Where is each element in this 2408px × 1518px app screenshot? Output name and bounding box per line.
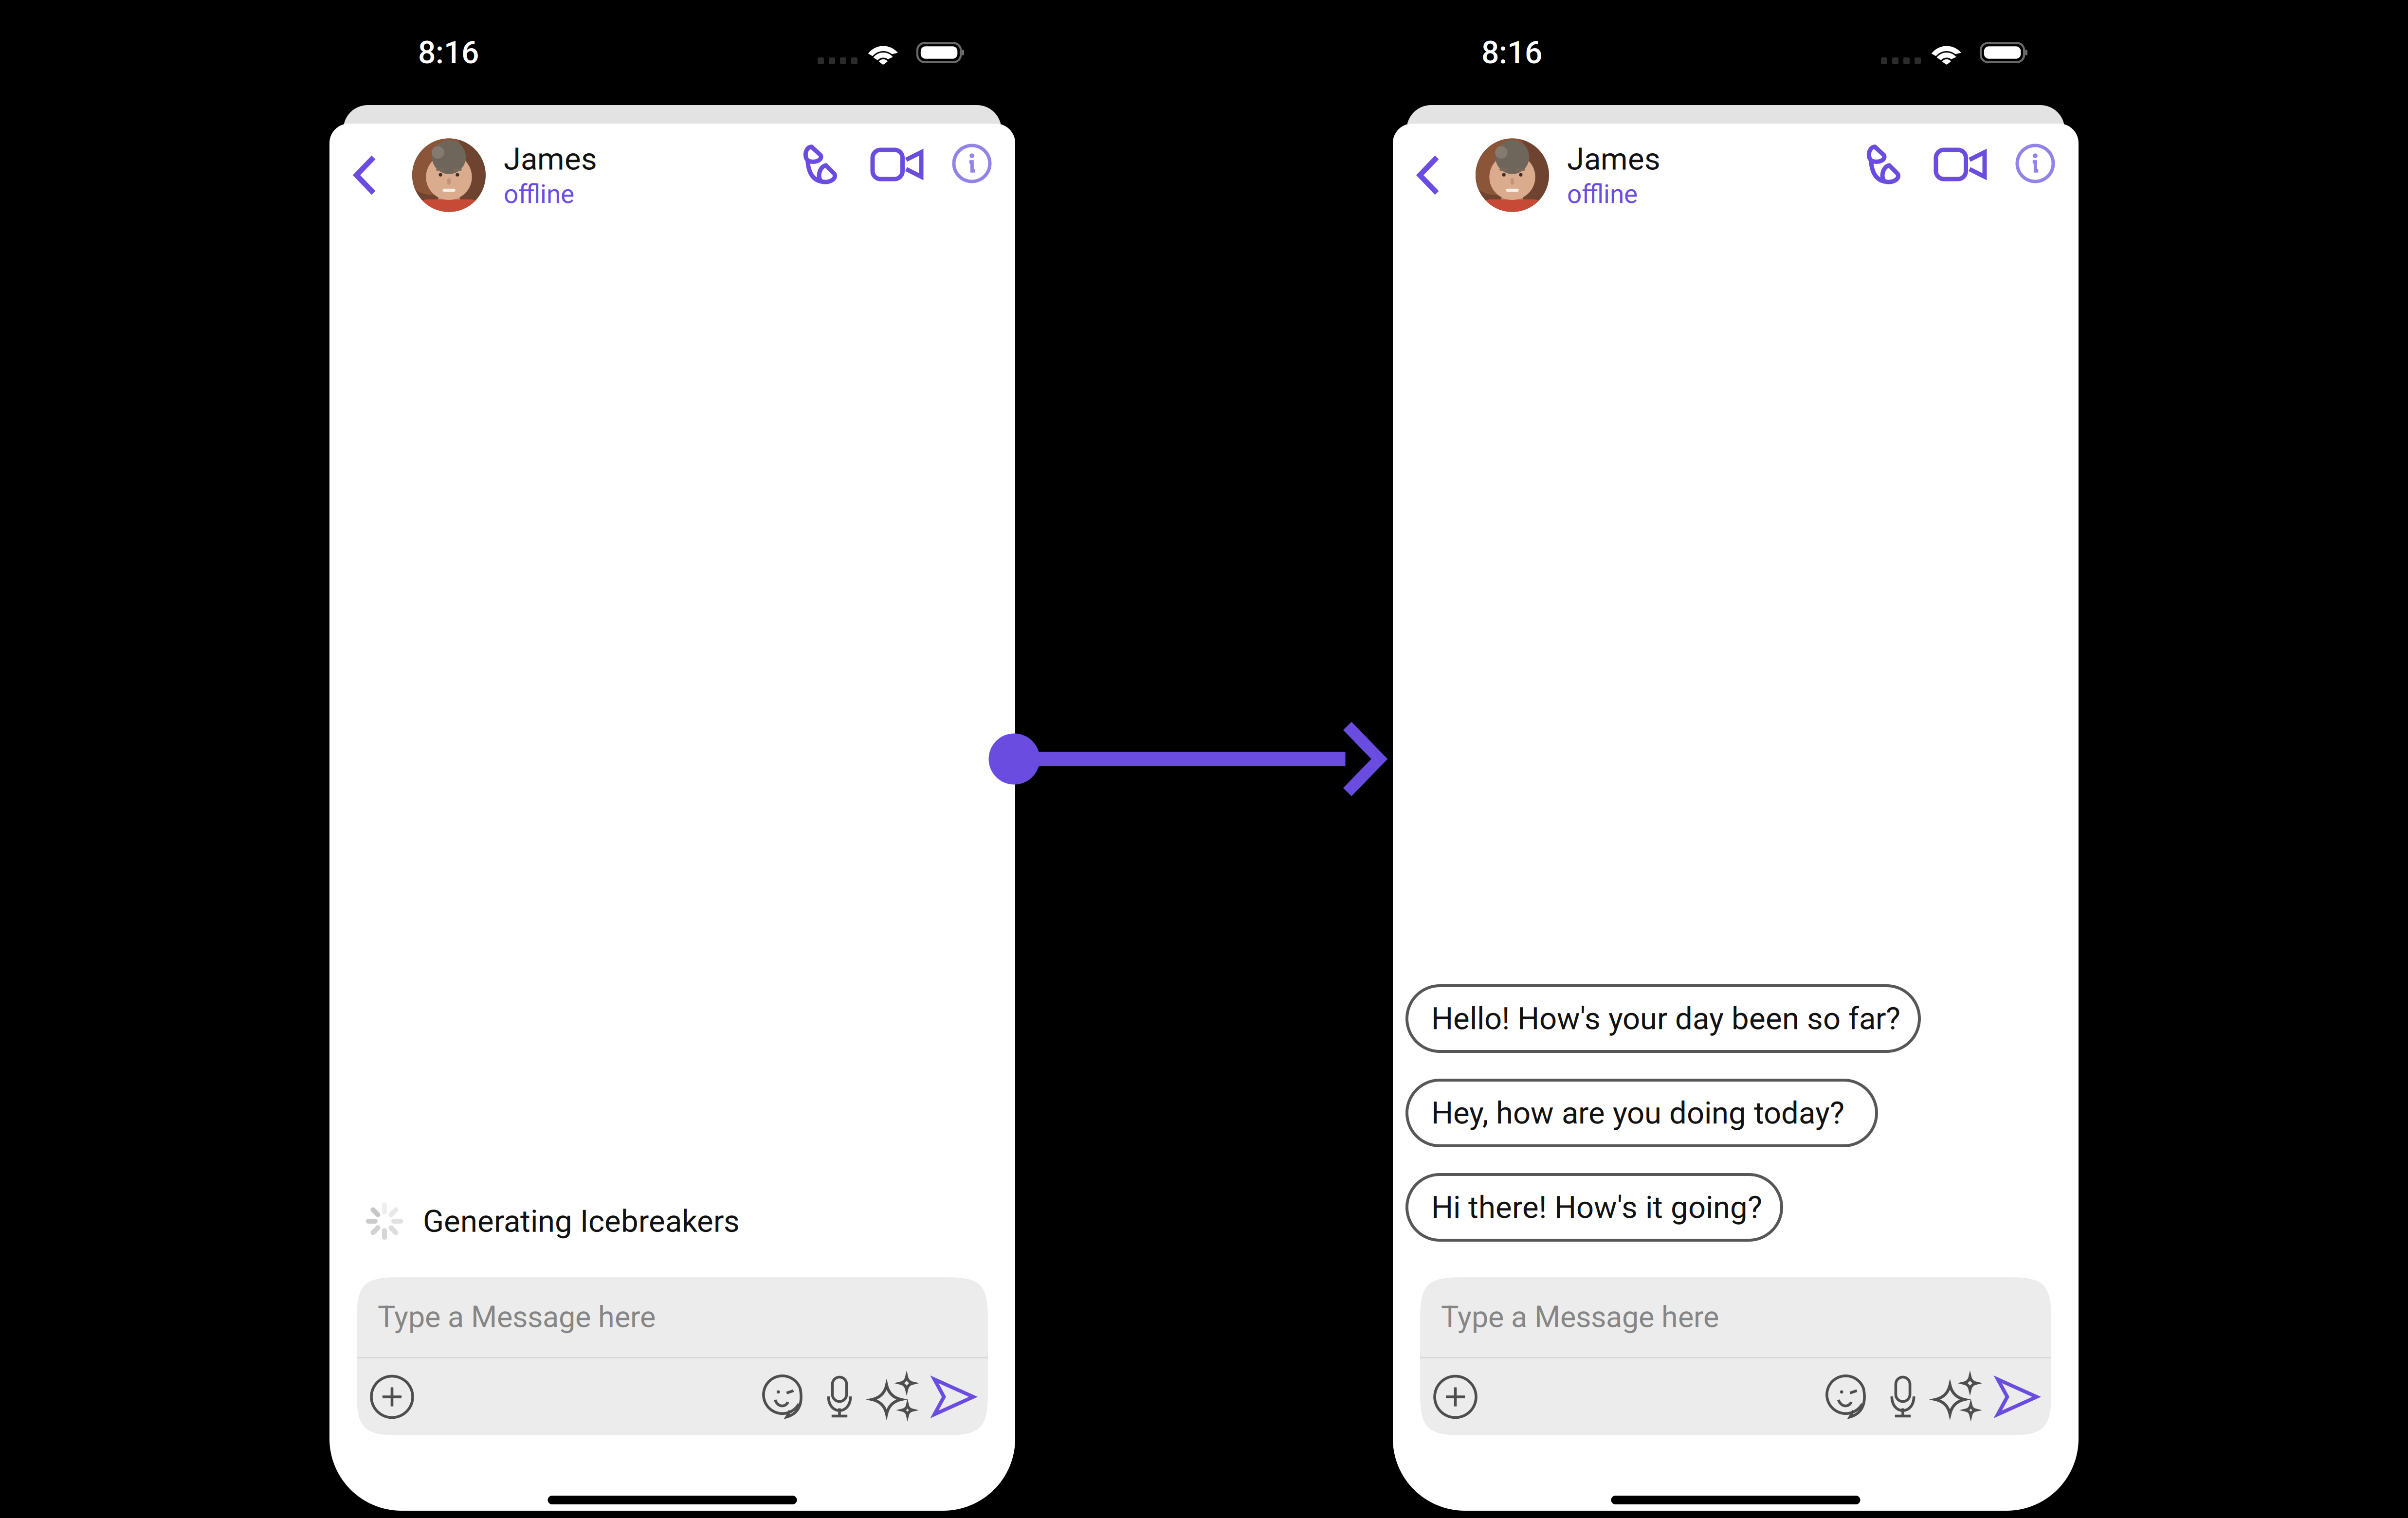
button[interactable]: Stickers [763, 1375, 806, 1418]
staticText: Type a Message here [1441, 1300, 1719, 1334]
staticText: Hello! How's your day been so far? [1431, 1001, 1900, 1037]
staticText: Hi there! How's it going? [1431, 1189, 1762, 1225]
button[interactable]: Video call [1929, 138, 1992, 191]
button[interactable]: Voice message [826, 1376, 853, 1417]
staticText: 8:16 [418, 34, 479, 71]
staticText: Generating Icebreakers [423, 1203, 740, 1239]
button[interactable]: Send [1998, 1379, 2037, 1414]
staticText: James [504, 141, 597, 177]
button[interactable]: Conversation info [2010, 137, 2060, 190]
staticText: offline [504, 179, 574, 209]
button[interactable]: Back [1408, 145, 1449, 205]
button[interactable]: Stickers [1826, 1375, 1869, 1418]
button[interactable]: Hey, how are you doing today? [1407, 1080, 1877, 1146]
staticText: Type a Message here [378, 1300, 656, 1334]
button[interactable]: Voice message [1890, 1376, 1916, 1417]
button[interactable]: Conversation info [947, 137, 997, 190]
button[interactable]: Add attachment [371, 1376, 413, 1418]
staticText: offline [1567, 179, 1638, 209]
button[interactable]: Add attachment [1435, 1376, 1476, 1418]
button[interactable]: AI suggestions [872, 1376, 913, 1417]
button[interactable]: Video call [865, 138, 929, 191]
staticText: Hey, how are you doing today? [1431, 1095, 1844, 1131]
staticText: James [1567, 141, 1660, 177]
button[interactable]: Hello! How's your day been so far? [1407, 986, 1919, 1051]
button[interactable]: Audio call [1857, 138, 1910, 191]
staticText: 8:16 [1481, 34, 1542, 71]
button[interactable]: Back [345, 145, 385, 205]
button[interactable]: Audio call [793, 138, 847, 191]
button[interactable]: Send [934, 1379, 973, 1414]
button[interactable]: Hi there! How's it going? [1407, 1175, 1782, 1240]
button[interactable]: AI suggestions [1935, 1376, 1976, 1417]
